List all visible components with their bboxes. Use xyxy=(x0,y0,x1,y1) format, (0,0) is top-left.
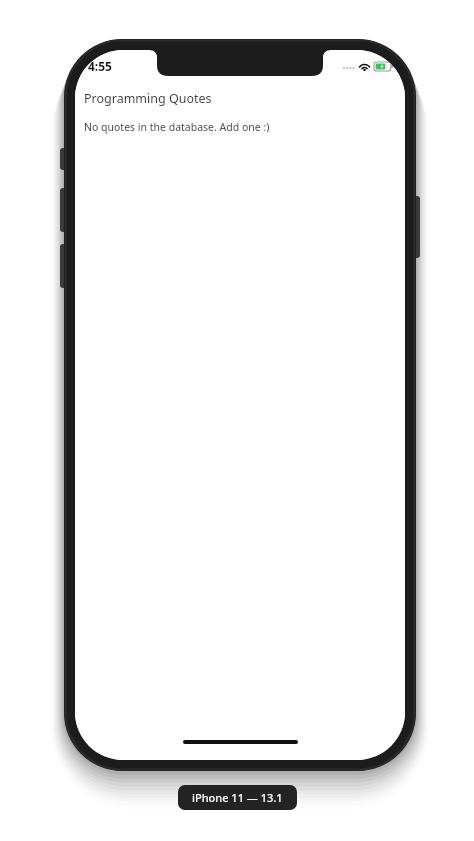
staticText: Programming Quotes xyxy=(84,90,212,107)
staticText: No quotes in the database. Add one :) xyxy=(84,120,270,134)
staticText: 4:55 xyxy=(88,58,112,74)
staticText: iPhone 11 — 13.1 xyxy=(192,790,283,805)
button[interactable]: iPhone 11 — 13.1 xyxy=(178,785,297,810)
